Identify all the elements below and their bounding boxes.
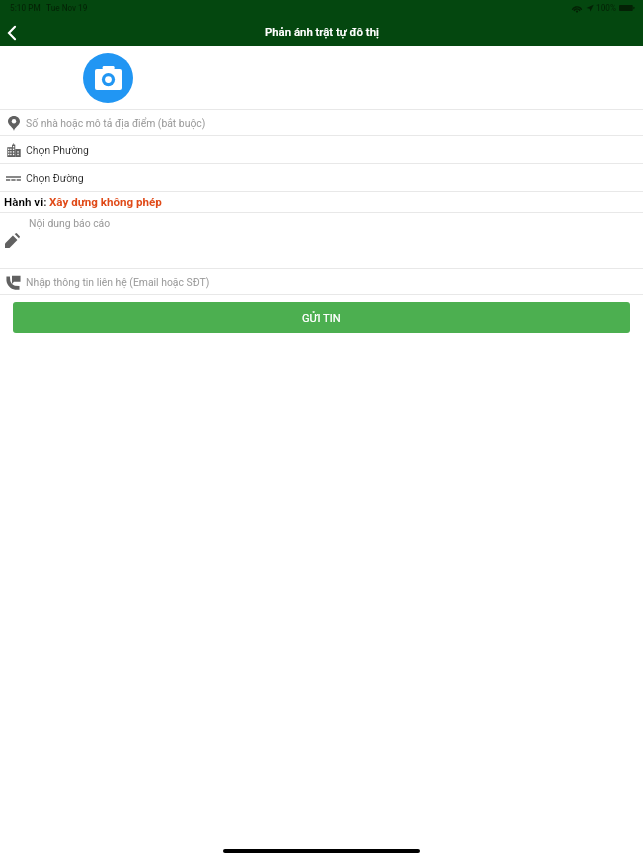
staticText: Chọn Phường bbox=[26, 144, 89, 156]
button[interactable]: Chọn Đường bbox=[0, 164, 643, 191]
button[interactable]: GỬI TIN bbox=[13, 302, 630, 333]
staticText: 5:10 PM bbox=[10, 3, 41, 13]
button[interactable]: Take photo bbox=[83, 53, 133, 103]
staticText: 100% bbox=[596, 3, 616, 13]
button[interactable]: Nội dung báo cáo bbox=[0, 213, 643, 268]
staticText: GỬI TIN bbox=[302, 312, 341, 325]
button[interactable]: Nhập thông tin liên hệ (Email hoặc SĐT) bbox=[0, 269, 643, 294]
button[interactable]: Hành vi: bbox=[0, 192, 643, 212]
staticText: Tue Nov 19 bbox=[46, 3, 88, 13]
staticText: Số nhà hoặc mô tả địa điểm (bắt buộc) bbox=[26, 117, 206, 129]
staticText: Phản ánh trật tự đô thị bbox=[265, 25, 379, 38]
staticText: Hành vi: bbox=[4, 195, 47, 209]
staticText: Chọn Đường bbox=[26, 172, 84, 184]
staticText: Nhập thông tin liên hệ (Email hoặc SĐT) bbox=[26, 276, 210, 288]
button[interactable]: Số nhà hoặc mô tả địa điểm (bắt buộc) bbox=[0, 110, 643, 135]
button[interactable]: Chọn Phường bbox=[0, 136, 643, 163]
staticText: Xây dựng không phép bbox=[49, 195, 162, 209]
button[interactable]: Back bbox=[0, 20, 26, 46]
staticText: Nội dung báo cáo bbox=[29, 217, 111, 229]
